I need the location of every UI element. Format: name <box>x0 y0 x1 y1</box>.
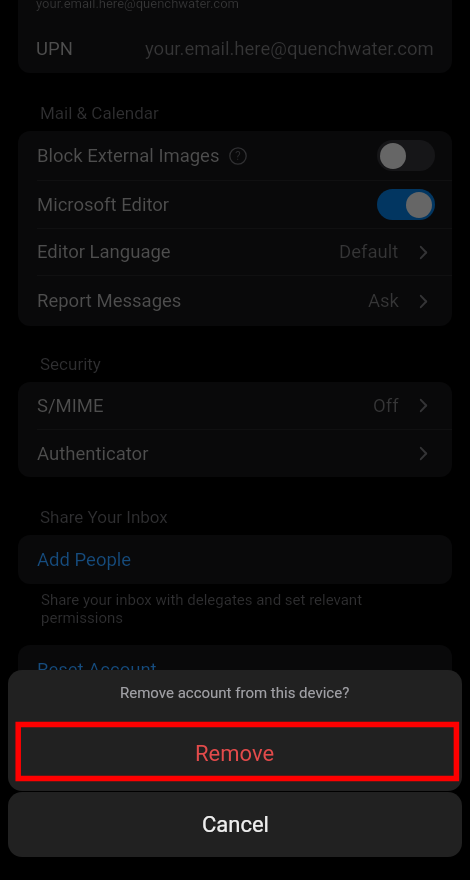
button[interactable]: Toggle on <box>377 189 435 220</box>
button[interactable]: Microsoft Editor <box>18 181 452 228</box>
staticText: Add People <box>37 549 132 571</box>
staticText: Security <box>40 354 101 374</box>
staticText: Block External Images <box>37 145 220 167</box>
staticText: Reset Account <box>37 659 157 681</box>
button[interactable]: Block External Images <box>18 131 452 180</box>
staticText: your.email.here@quenchwater.com <box>145 38 434 60</box>
staticText: Cancel <box>202 812 269 838</box>
staticText: Off <box>373 395 399 417</box>
staticText: Default <box>339 241 399 263</box>
button[interactable]: Report Messages <box>18 276 452 326</box>
other: Help <box>229 147 247 165</box>
button[interactable]: Cancel <box>8 792 462 857</box>
button[interactable]: S/MIME <box>18 382 452 429</box>
staticText: Authenticator <box>37 443 149 465</box>
staticText: your.email.here@quenchwater.com <box>36 0 239 11</box>
staticText: Remove account from this device? <box>120 684 350 702</box>
staticText: Remove <box>195 741 275 767</box>
staticText: UPN <box>36 38 73 60</box>
staticText: Share Your Inbox <box>40 507 168 527</box>
button[interactable]: Toggle off <box>377 140 435 171</box>
staticText: Editor Language <box>37 241 171 263</box>
button[interactable]: Reset Account <box>18 645 452 694</box>
staticText: Mail & Calendar <box>40 103 159 123</box>
staticText: ? <box>235 149 241 163</box>
staticText: Share your inbox with delegates and set … <box>41 591 363 627</box>
staticText: S/MIME <box>37 395 104 417</box>
button[interactable]: Add People <box>18 535 452 584</box>
staticText: Microsoft Editor <box>37 194 170 216</box>
button[interactable]: Editor Language <box>18 229 452 275</box>
staticText: Report Messages <box>37 290 182 312</box>
staticText: Ask <box>368 290 399 312</box>
button[interactable]: Remove <box>8 716 462 791</box>
button[interactable]: Authenticator <box>18 430 452 477</box>
